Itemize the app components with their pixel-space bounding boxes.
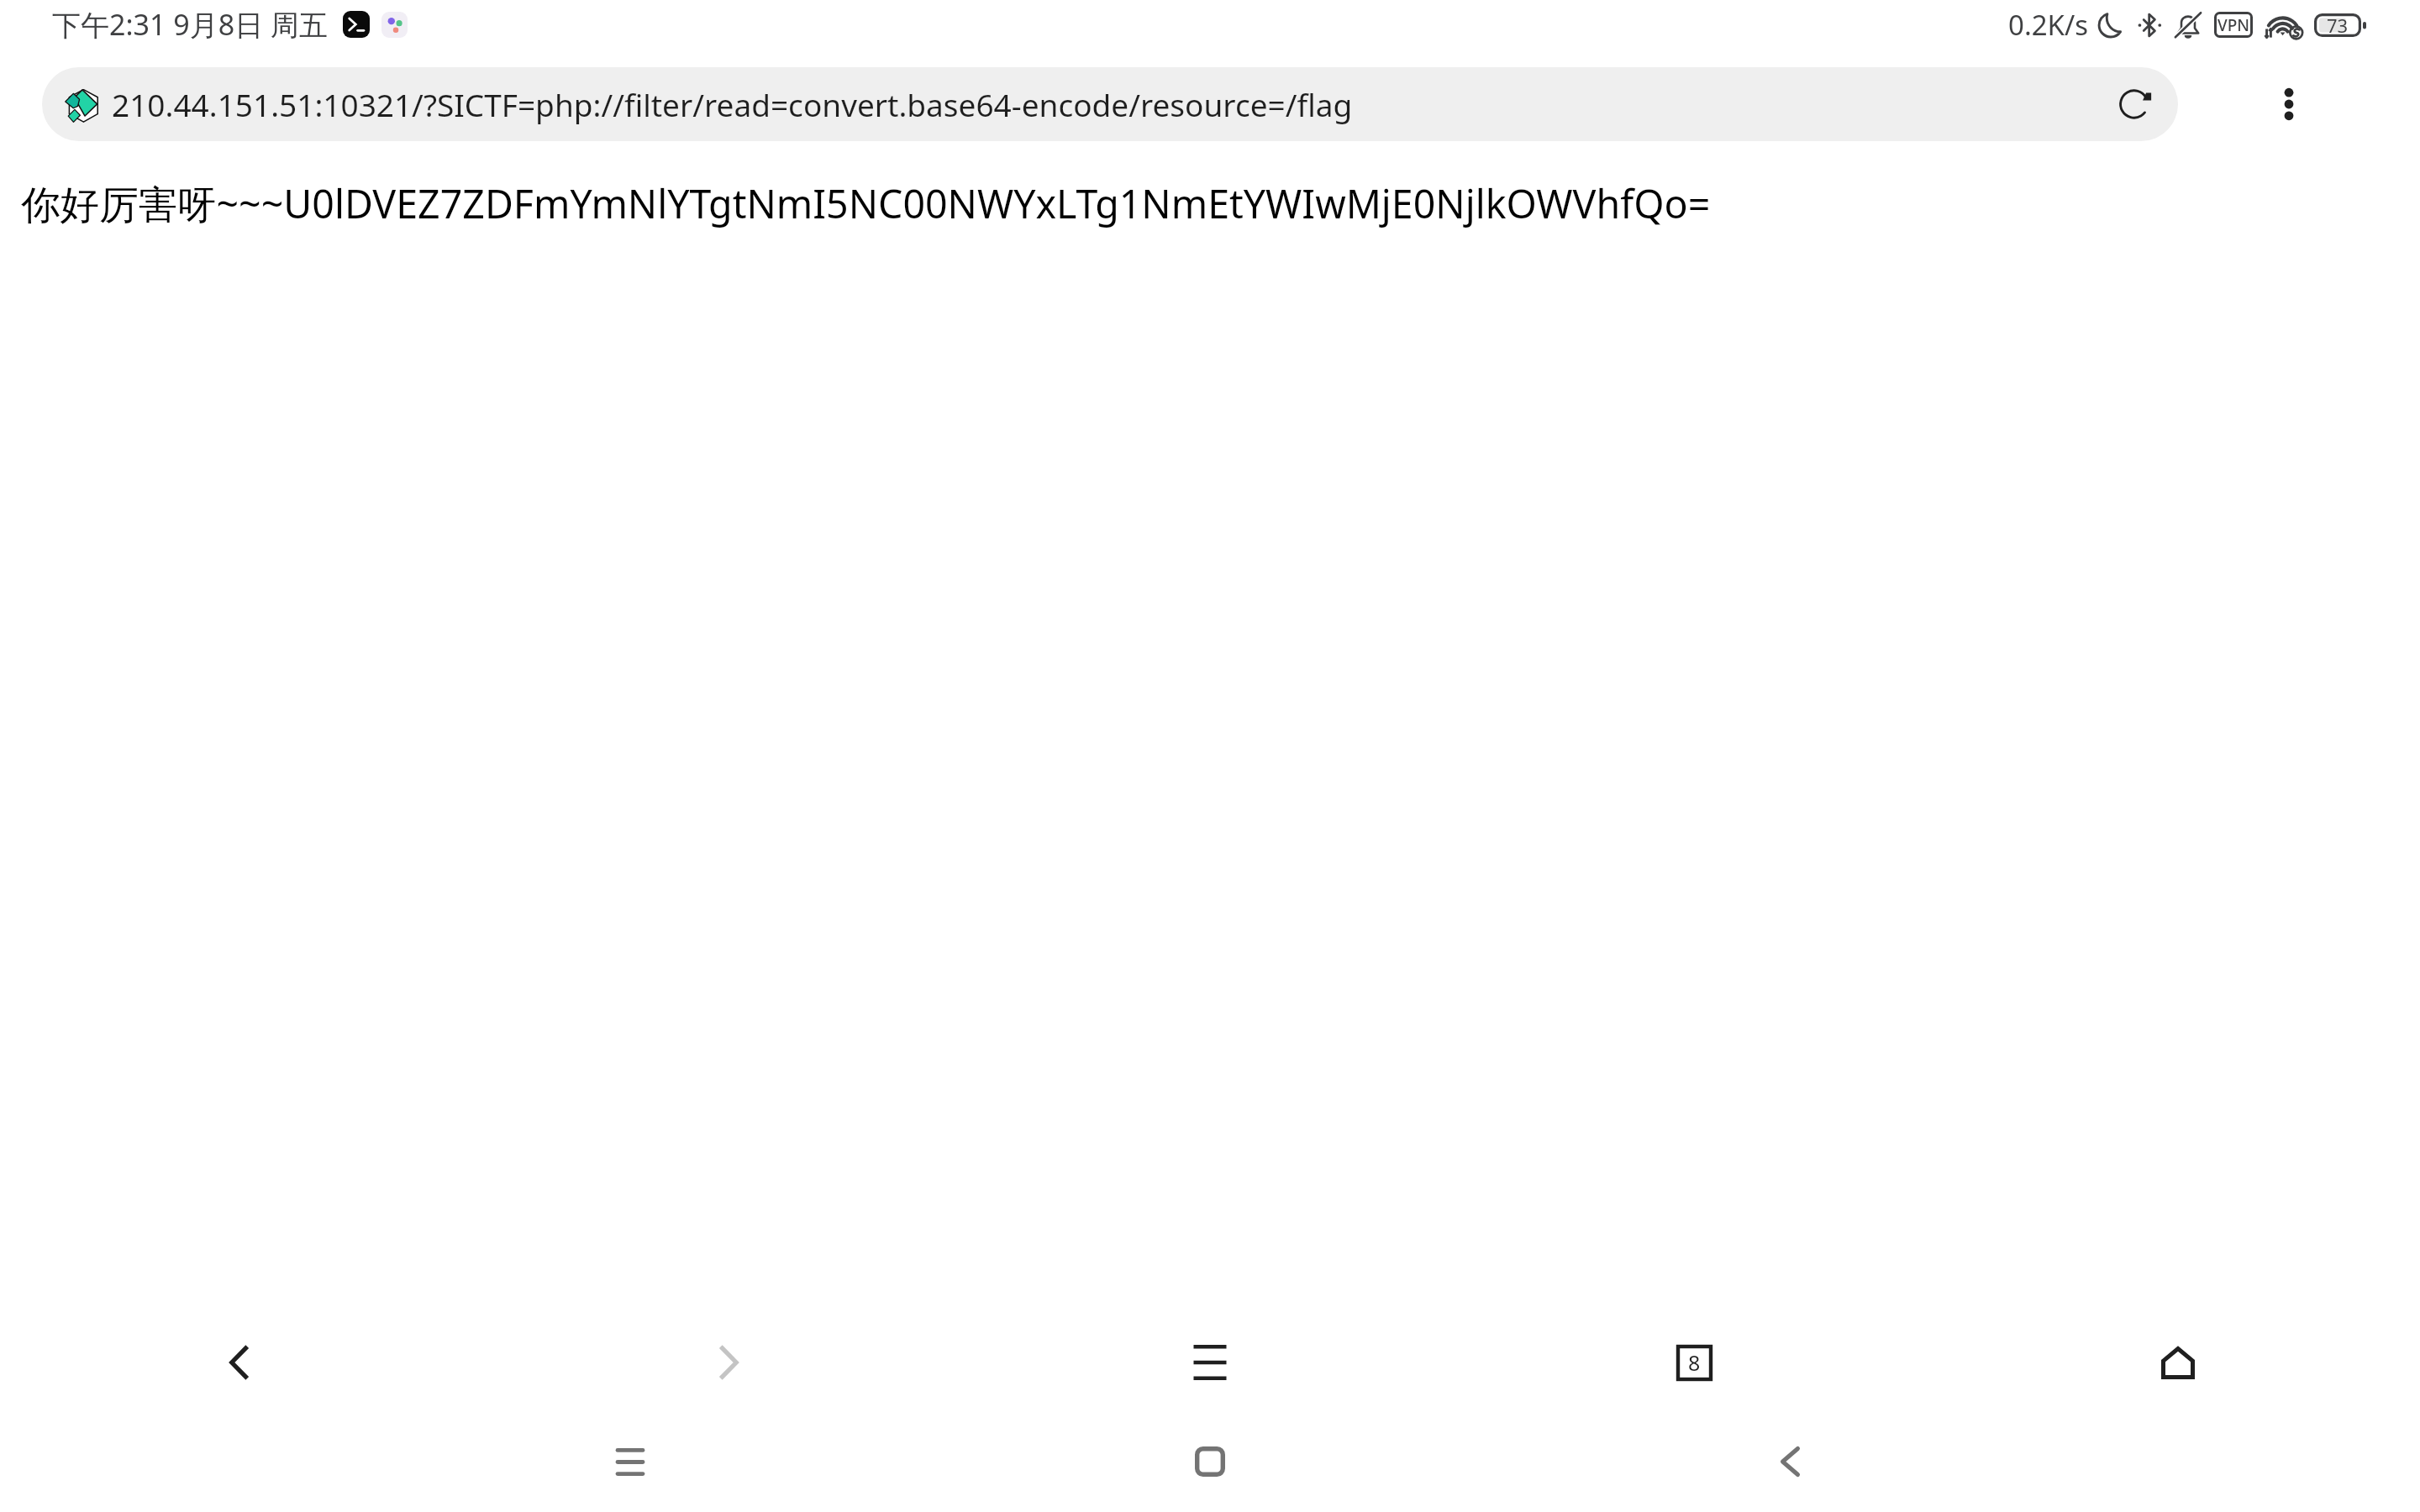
staticText: 210.44.151.51:10321/?SICTF=php://filter/… xyxy=(112,83,1353,125)
button[interactable]: Forward xyxy=(695,1329,762,1396)
button[interactable]: Back xyxy=(206,1329,273,1396)
staticText: 0.2K/s xyxy=(2008,6,2089,44)
button[interactable]: More options xyxy=(2252,67,2326,141)
staticText: 8 xyxy=(1688,1348,1701,1377)
button[interactable]: Reload page xyxy=(2109,78,2161,130)
button[interactable]: Back xyxy=(1756,1428,1823,1495)
staticText: 73 xyxy=(2327,13,2349,36)
button[interactable]: Tabs xyxy=(1660,1329,1728,1396)
staticText: 下午2:31 9月8日 周五 xyxy=(52,5,329,44)
button[interactable]: Assistant xyxy=(381,12,408,38)
button[interactable]: Home xyxy=(2144,1329,2212,1396)
button[interactable]: Terminal xyxy=(343,11,370,38)
button[interactable]: Recent apps xyxy=(597,1428,664,1495)
staticText: VPN xyxy=(2217,14,2250,36)
staticText: 你好厉害呀~~~U0lDVEZ7ZDFmYmNlYTgtNmI5NC00NWYx… xyxy=(21,176,1711,230)
button[interactable]: 210.44.151.51:10321/?SICTF=php://filter/… xyxy=(42,67,2178,141)
button[interactable]: Home xyxy=(1176,1428,1244,1495)
button[interactable]: Menu xyxy=(1176,1329,1244,1396)
